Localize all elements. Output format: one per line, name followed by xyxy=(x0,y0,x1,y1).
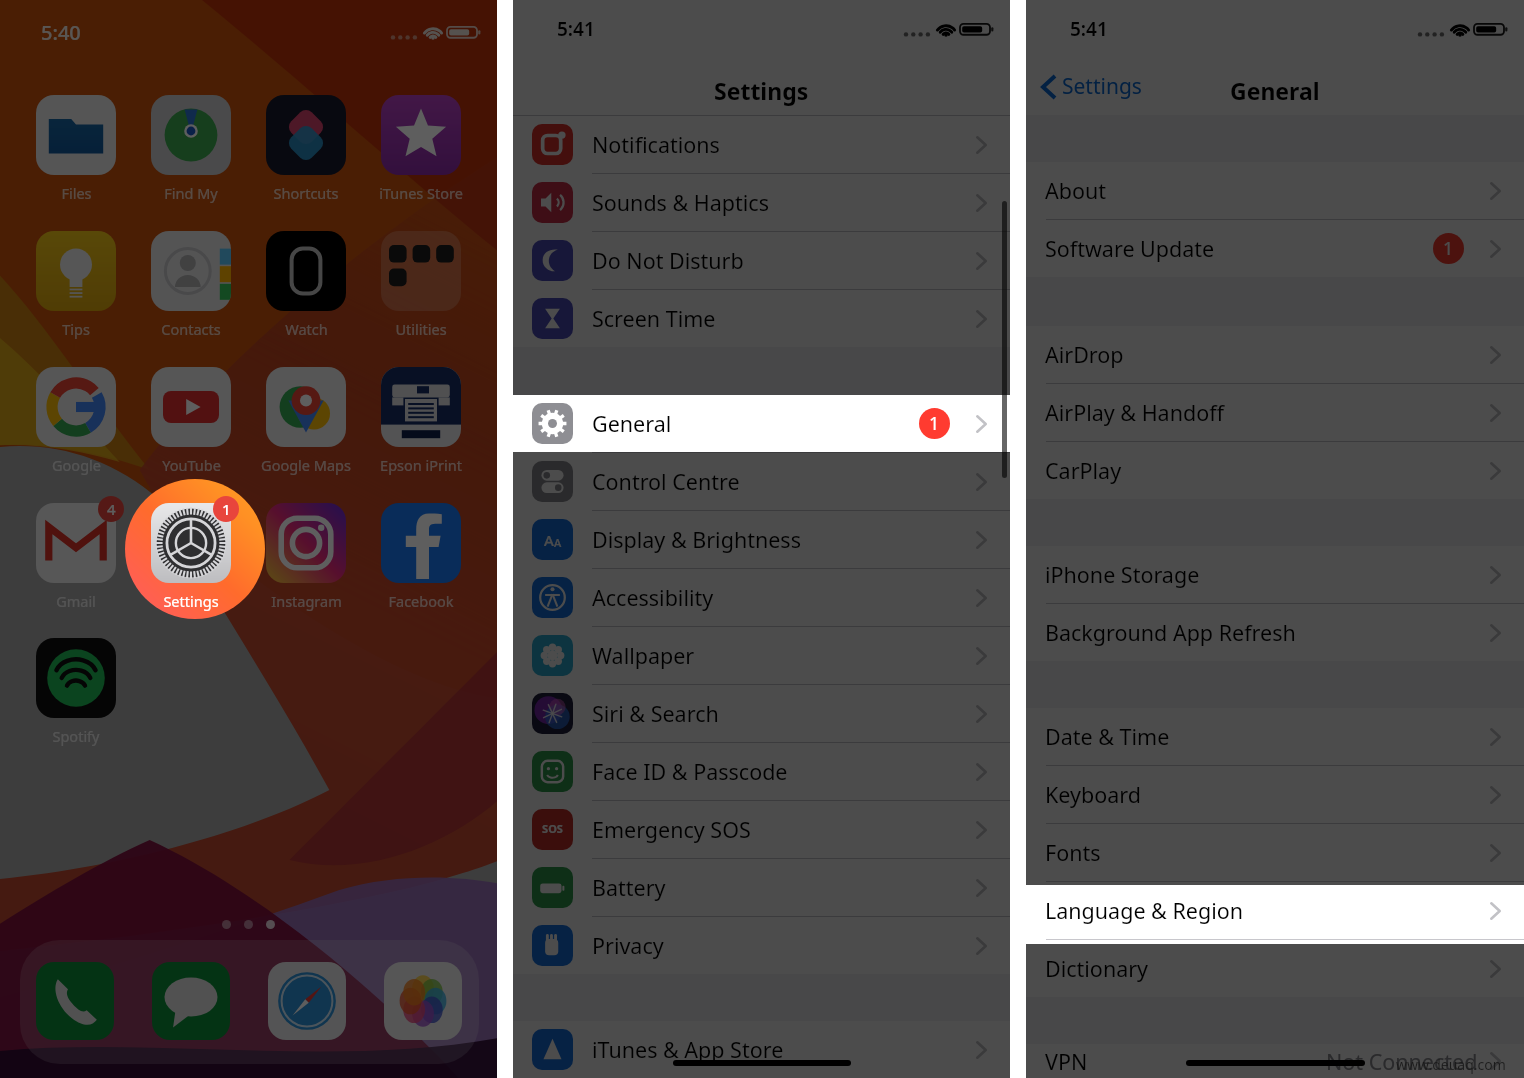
button[interactable]: A xyxy=(513,511,1010,568)
button[interactable]: YouTube xyxy=(134,367,248,475)
staticText: A xyxy=(544,530,554,550)
button[interactable]: iPhone Storage xyxy=(1026,546,1524,603)
button[interactable]: Dictionary xyxy=(1026,940,1524,997)
button[interactable]: Privacy xyxy=(513,917,1010,974)
staticText: AirPlay & Handoff xyxy=(1045,398,1224,427)
staticText: Emergency SOS xyxy=(592,815,751,844)
staticText: Watch xyxy=(285,319,328,339)
button[interactable]: Spotify xyxy=(19,638,133,746)
staticText: Date & Time xyxy=(1045,722,1170,751)
button[interactable]: Do Not Disturb xyxy=(513,232,1010,289)
button[interactable]: iTunes Store xyxy=(364,95,478,203)
button[interactable]: About xyxy=(1026,162,1524,219)
button[interactable]: Screen Time xyxy=(513,290,1010,347)
staticText: Facebook xyxy=(388,591,454,611)
staticText: SOS xyxy=(532,821,573,850)
staticText: 1 xyxy=(222,499,231,519)
staticText: Siri & Search xyxy=(592,699,719,728)
button[interactable]: Google Maps xyxy=(249,367,363,475)
button[interactable]: Settings xyxy=(134,503,248,611)
button[interactable]: Messages xyxy=(152,962,230,1040)
staticText: Contacts xyxy=(161,319,221,339)
staticText: Fonts xyxy=(1045,838,1101,867)
button[interactable]: 4 xyxy=(19,503,133,611)
button[interactable]: Fonts xyxy=(1026,824,1524,881)
button[interactable]: Face ID & Passcode xyxy=(513,743,1010,800)
staticText: Instagram xyxy=(271,591,342,611)
button[interactable]: Photos xyxy=(384,962,462,1040)
button[interactable]: VPN xyxy=(1026,1044,1524,1078)
button[interactable]: Control Centre xyxy=(513,453,1010,510)
staticText: Epson iPrint xyxy=(380,455,462,475)
button[interactable]: Contacts xyxy=(134,231,248,339)
staticText: Google xyxy=(52,455,101,475)
button[interactable]: Files xyxy=(19,95,133,203)
staticText: Background App Refresh xyxy=(1045,618,1296,647)
staticText: Privacy xyxy=(592,931,664,960)
staticText: Settings xyxy=(714,75,809,106)
button[interactable]: Find My xyxy=(134,95,248,203)
staticText: Find My xyxy=(164,183,218,203)
staticText: Accessibility xyxy=(592,583,714,612)
button[interactable]: Language & Region xyxy=(1026,882,1524,939)
staticText: Notifications xyxy=(592,130,720,159)
button[interactable]: CarPlay xyxy=(1026,442,1524,499)
button[interactable]: iTunes & App Store xyxy=(513,1021,1010,1078)
button[interactable]: Instagram xyxy=(249,503,363,611)
button[interactable]: Watch xyxy=(249,231,363,339)
staticText: iPhone Storage xyxy=(1045,560,1200,589)
staticText: CarPlay xyxy=(1045,456,1122,485)
staticText: Wallpaper xyxy=(592,641,695,670)
staticText: Dictionary xyxy=(1045,954,1149,983)
button[interactable]: Notifications xyxy=(513,116,1010,173)
staticText: YouTube xyxy=(162,455,221,475)
staticText: iTunes Store xyxy=(379,183,463,203)
button[interactable]: Settings xyxy=(1042,72,1142,101)
button[interactable]: Wallpaper xyxy=(513,627,1010,684)
button[interactable]: Shortcuts xyxy=(249,95,363,203)
button[interactable]: Date & Time xyxy=(1026,708,1524,765)
staticText: Battery xyxy=(592,873,666,902)
button[interactable]: SOS xyxy=(513,801,1010,858)
staticText: 1 xyxy=(1443,236,1454,261)
staticText: Screen Time xyxy=(592,304,716,333)
staticText: Shortcuts xyxy=(273,183,339,203)
button[interactable]: Phone xyxy=(36,962,114,1040)
staticText: Display & Brightness xyxy=(592,525,801,554)
staticText: Spotify xyxy=(52,726,100,746)
staticText: Google Maps xyxy=(261,455,351,475)
button[interactable]: Tips xyxy=(19,231,133,339)
button[interactable]: General xyxy=(513,395,1010,452)
button[interactable]: Sounds & Haptics xyxy=(513,174,1010,231)
staticText: 4 xyxy=(107,499,116,519)
staticText: General xyxy=(592,409,672,438)
button[interactable]: Background App Refresh xyxy=(1026,604,1524,661)
button[interactable]: Utilities xyxy=(364,231,478,339)
button[interactable]: Accessibility xyxy=(513,569,1010,626)
button[interactable]: Safari xyxy=(268,962,346,1040)
staticText: Control Centre xyxy=(592,467,740,496)
button[interactable]: Google xyxy=(19,367,133,475)
staticText: A xyxy=(554,535,562,550)
staticText: Settings xyxy=(163,591,219,611)
staticText: Do Not Disturb xyxy=(592,246,744,275)
staticText: General xyxy=(1230,75,1320,106)
staticText: Settings xyxy=(1062,72,1142,101)
staticText: www.deuaq.com xyxy=(1396,1055,1506,1074)
button[interactable]: AirPlay & Handoff xyxy=(1026,384,1524,441)
button[interactable]: Epson iPrint xyxy=(364,367,478,475)
staticText: 5:40 xyxy=(41,19,81,46)
button[interactable]: Battery xyxy=(513,859,1010,916)
button[interactable]: AirDrop xyxy=(1026,326,1524,383)
button[interactable]: Facebook xyxy=(364,503,478,611)
staticText: Settings xyxy=(163,591,219,611)
button[interactable]: 1 xyxy=(134,503,248,611)
button[interactable]: Software Update xyxy=(1026,220,1524,277)
button[interactable]: Settings app xyxy=(125,479,265,619)
staticText: About xyxy=(1045,176,1107,205)
button[interactable]: Keyboard xyxy=(1026,766,1524,823)
button[interactable]: Siri & Search xyxy=(513,685,1010,742)
staticText: 5:41 xyxy=(1070,16,1108,42)
staticText: AirDrop xyxy=(1045,340,1124,369)
staticText: Not Connected xyxy=(1326,1047,1478,1076)
